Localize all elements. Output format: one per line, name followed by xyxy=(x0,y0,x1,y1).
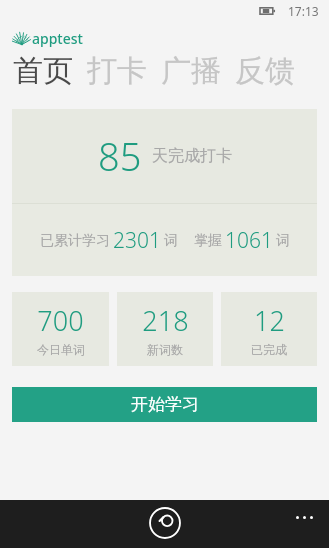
staticText: 掌握 xyxy=(194,232,222,250)
button[interactable]: 218 xyxy=(117,292,213,366)
staticText: 新词数 xyxy=(147,342,183,357)
button[interactable]: 12 xyxy=(221,292,317,366)
button[interactable]: 打卡 xyxy=(87,52,147,90)
button[interactable]: Search xyxy=(148,506,182,540)
staticText: 词 xyxy=(276,232,290,250)
staticText: 已累计学习 xyxy=(40,232,110,250)
staticText: 1061 xyxy=(225,226,273,255)
button[interactable]: More options xyxy=(287,505,321,529)
staticText: 17:13 xyxy=(288,3,319,19)
staticText: 85 xyxy=(98,130,142,182)
button[interactable]: 开始学习 xyxy=(12,387,317,422)
staticText: 已完成 xyxy=(251,342,287,357)
button[interactable]: 反馈 xyxy=(235,52,295,90)
staticText: 打卡 xyxy=(87,52,147,90)
staticText: 反馈 xyxy=(235,52,295,90)
staticText: 218 xyxy=(142,302,189,339)
staticText: apptest xyxy=(32,29,83,48)
button[interactable]: 85 xyxy=(12,109,317,276)
staticText: 今日单词 xyxy=(37,342,85,357)
button[interactable]: 700 xyxy=(12,292,109,366)
button[interactable]: 广播 xyxy=(161,52,221,90)
button[interactable]: 首页 xyxy=(13,52,73,90)
staticText: 首页 xyxy=(13,52,73,90)
staticText: 广播 xyxy=(161,52,221,90)
staticText: 词 xyxy=(164,232,178,250)
staticText: 2301 xyxy=(113,226,161,255)
staticText: 开始学习 xyxy=(131,394,199,415)
staticText: 700 xyxy=(37,302,84,339)
staticText: 天完成打卡 xyxy=(152,146,232,166)
staticText: 12 xyxy=(254,302,285,339)
